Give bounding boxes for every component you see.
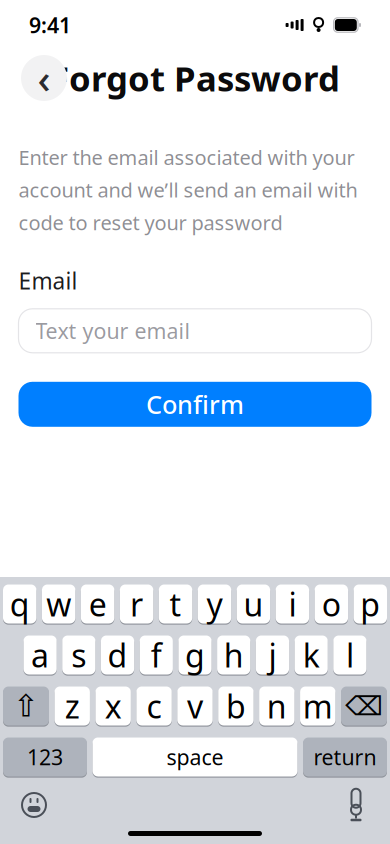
- button[interactable]: l: [333, 635, 366, 675]
- button[interactable]: n: [259, 686, 294, 726]
- staticText: ⌫: [345, 691, 383, 721]
- button[interactable]: w: [42, 584, 75, 624]
- staticText: n: [267, 685, 287, 727]
- button[interactable]: Delete: [341, 686, 387, 726]
- staticText: f: [151, 634, 162, 676]
- staticText: x: [105, 685, 122, 727]
- staticText: ‹: [37, 51, 50, 104]
- button[interactable]: h: [217, 635, 250, 675]
- button[interactable]: Back: [21, 55, 67, 101]
- button[interactable]: v: [177, 686, 213, 726]
- staticText: j: [268, 634, 276, 676]
- staticText: z: [65, 685, 80, 727]
- staticText: return: [313, 743, 376, 771]
- staticText: i: [288, 583, 296, 625]
- staticText: Confirm: [146, 387, 244, 421]
- staticText: p: [360, 583, 380, 625]
- staticText: e: [89, 583, 107, 625]
- button[interactable]: f: [140, 635, 173, 675]
- staticText: 123: [27, 743, 63, 771]
- staticText: o: [322, 583, 341, 625]
- button[interactable]: Dictation: [336, 787, 376, 823]
- button[interactable]: s: [62, 635, 95, 675]
- staticText: m: [303, 685, 333, 727]
- staticText: s: [71, 634, 86, 676]
- staticText: d: [108, 634, 128, 676]
- staticText: Forgot Password: [50, 55, 340, 101]
- staticText: g: [185, 634, 205, 676]
- button[interactable]: 123: [3, 737, 87, 777]
- staticText: space: [166, 743, 223, 771]
- staticText: u: [243, 583, 263, 625]
- button[interactable]: t: [159, 584, 192, 624]
- button[interactable]: e: [81, 584, 114, 624]
- staticText: ⇧: [13, 689, 39, 723]
- button[interactable]: a: [23, 635, 57, 675]
- button[interactable]: z: [54, 686, 90, 726]
- staticText: a: [31, 634, 49, 676]
- button[interactable]: u: [237, 584, 270, 624]
- button[interactable]: g: [178, 635, 212, 675]
- button[interactable]: Shift: [3, 686, 49, 726]
- staticText: t: [169, 583, 181, 625]
- button[interactable]: Confirm: [18, 382, 371, 427]
- button[interactable]: c: [136, 686, 172, 726]
- staticText: h: [224, 634, 244, 676]
- staticText: w: [46, 583, 71, 625]
- staticText: c: [147, 685, 162, 727]
- button[interactable]: k: [295, 635, 328, 675]
- button[interactable]: d: [101, 635, 134, 675]
- button[interactable]: q: [3, 584, 36, 624]
- staticText: Enter the email associated with your acc…: [18, 144, 357, 236]
- staticText: v: [187, 685, 203, 727]
- button[interactable]: m: [300, 686, 335, 726]
- staticText: y: [206, 583, 222, 625]
- button[interactable]: x: [95, 686, 131, 726]
- staticText: Email: [18, 266, 77, 296]
- button[interactable]: b: [218, 686, 254, 726]
- button[interactable]: return: [303, 737, 387, 777]
- staticText: q: [10, 583, 30, 625]
- staticText: l: [346, 634, 354, 676]
- staticText: 9:41: [29, 11, 71, 39]
- button[interactable]: y: [198, 584, 231, 624]
- button[interactable]: Emoji keyboard: [14, 788, 54, 822]
- button[interactable]: p: [354, 584, 387, 624]
- staticText: k: [303, 634, 320, 676]
- staticText: b: [226, 685, 246, 727]
- staticText: Text your email: [35, 317, 190, 345]
- button[interactable]: Text your email: [18, 309, 371, 353]
- button[interactable]: j: [256, 635, 289, 675]
- button[interactable]: space: [92, 737, 297, 777]
- button[interactable]: r: [120, 584, 153, 624]
- button[interactable]: o: [315, 584, 348, 624]
- staticText: r: [130, 583, 143, 625]
- button[interactable]: i: [276, 584, 309, 624]
